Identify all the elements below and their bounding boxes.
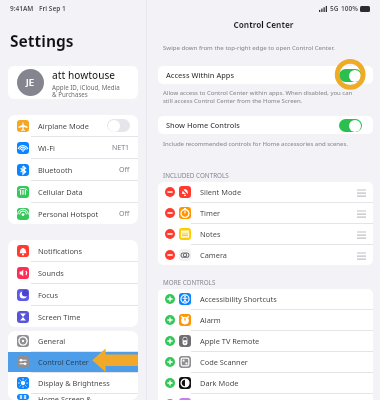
- staticText: Home Screen &: [38, 394, 92, 400]
- staticText: Control Center: [147, 19, 380, 30]
- staticText: Swipe down from the top-right edge to op…: [163, 43, 335, 51]
- staticText: Allow access to Control Center within ap…: [163, 89, 353, 105]
- staticText: Access Within Apps: [166, 70, 235, 80]
- button[interactable]: Add: [165, 315, 175, 325]
- staticText: Off: [119, 165, 130, 175]
- staticText: Notifications: [38, 246, 82, 256]
- staticText: Wi-Fi: [38, 143, 55, 153]
- staticText: Dark Mode: [200, 378, 239, 388]
- staticText: General: [38, 336, 66, 346]
- button[interactable]: Screen Time: [8, 306, 138, 327]
- button[interactable]: General: [8, 331, 138, 351]
- staticText: Notes: [200, 229, 221, 239]
- button[interactable]: Focus: [8, 284, 138, 305]
- staticText: Alarm: [200, 315, 221, 325]
- staticText: Cellular Data: [38, 187, 83, 197]
- button[interactable]: Home Screen &: [8, 394, 138, 400]
- staticText: 5G: [330, 4, 339, 13]
- button[interactable]: Add: [165, 336, 175, 346]
- staticText: Apple TV Remote: [200, 336, 260, 346]
- button[interactable]: JE: [8, 66, 138, 99]
- staticText: 100%: [341, 4, 358, 13]
- button[interactable]: Add: [158, 373, 373, 393]
- button[interactable]: Wi-Fi: [8, 137, 138, 158]
- staticText: Bluetooth: [38, 165, 73, 175]
- staticText: Sounds: [38, 268, 64, 278]
- button[interactable]: Notifications: [8, 240, 138, 261]
- button[interactable]: Bluetooth: [8, 159, 138, 180]
- button[interactable]: Airplane Mode: [8, 115, 138, 136]
- staticText: Settings: [10, 30, 74, 51]
- button[interactable]: Sounds: [8, 262, 138, 283]
- button[interactable]: Remove: [165, 208, 175, 218]
- staticText: INCLUDED CONTROLS: [163, 171, 229, 180]
- button[interactable]: Remove: [165, 250, 175, 260]
- staticText: Apple ID, iCloud, Media & Purchases: [52, 83, 120, 98]
- staticText: 9:41AM: [10, 4, 34, 13]
- staticText: Code Scanner: [200, 357, 248, 367]
- button[interactable]: Remove: [165, 229, 175, 239]
- button[interactable]: Cellular Data: [8, 181, 138, 202]
- staticText: Airplane Mode: [38, 121, 89, 131]
- staticText: NET1: [112, 143, 130, 153]
- button[interactable]: Add: [158, 331, 373, 351]
- staticText: Include recommended controls for Home ac…: [163, 140, 348, 148]
- staticText: Accessibility Shortcuts: [200, 294, 277, 304]
- button[interactable]: Toggle: [107, 119, 130, 132]
- staticText: att howtouse: [52, 68, 116, 82]
- button[interactable]: Add: [165, 399, 175, 400]
- button[interactable]: Display & Brightness: [8, 373, 138, 393]
- button[interactable]: Add: [158, 289, 373, 309]
- staticText: Display & Brightness: [38, 378, 110, 388]
- staticText: Off: [119, 209, 130, 219]
- button[interactable]: Remove: [165, 187, 175, 197]
- staticText: Camera: [200, 250, 227, 260]
- staticText: JE: [26, 76, 35, 89]
- button[interactable]: Add: [158, 310, 373, 330]
- button[interactable]: Add: [165, 357, 175, 367]
- staticText: Personal Hotspot: [38, 209, 99, 219]
- button[interactable]: Personal Hotspot: [8, 203, 138, 224]
- staticText: MORE CONTROLS: [163, 278, 216, 287]
- button[interactable]: Remove: [158, 203, 373, 223]
- button[interactable]: Add: [158, 352, 373, 372]
- staticText: Focus: [38, 290, 58, 300]
- button[interactable]: Control Center: [8, 352, 138, 372]
- staticText: Screen Time: [38, 312, 81, 322]
- button[interactable]: Remove: [158, 245, 373, 265]
- staticText: Control Center: [38, 357, 89, 367]
- button[interactable]: Add: [158, 394, 373, 400]
- button[interactable]: Toggle: [339, 119, 362, 132]
- button[interactable]: Show Home Controls: [158, 116, 373, 134]
- button[interactable]: Add: [165, 378, 175, 388]
- staticText: Fri Sep 1: [39, 4, 66, 13]
- staticText: Silent Mode: [200, 187, 242, 197]
- button[interactable]: Remove: [158, 224, 373, 244]
- button[interactable]: Remove: [158, 182, 373, 202]
- staticText: Show Home Controls: [166, 120, 240, 130]
- button[interactable]: Add: [165, 294, 175, 304]
- staticText: Timer: [200, 208, 221, 218]
- button[interactable]: Toggle: [339, 69, 362, 82]
- button[interactable]: Access Within Apps: [158, 66, 373, 84]
